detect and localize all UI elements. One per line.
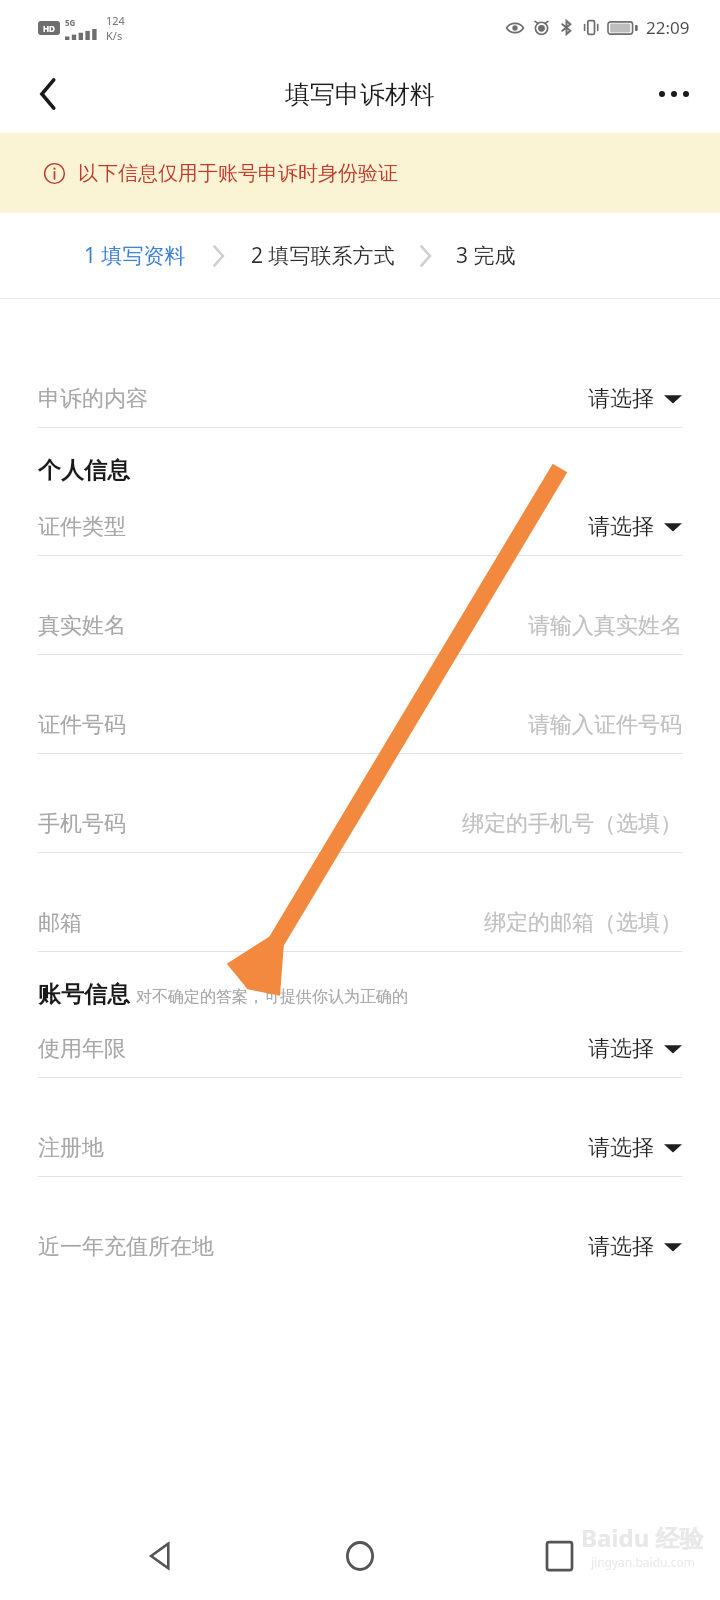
staticText: 账号信息 [38, 980, 130, 1009]
button[interactable]: 注册地 [0, 1120, 720, 1176]
staticText: 手机号码 [38, 810, 126, 838]
staticText: HD [43, 23, 55, 34]
staticText: 近一年充值所在地 [38, 1233, 214, 1261]
staticText: 5G [65, 17, 76, 28]
staticText: 请选择 [588, 1035, 654, 1063]
button[interactable]: 证件号码 [0, 697, 720, 753]
button[interactable]: 证件类型 [0, 499, 720, 555]
staticText: 证件号码 [38, 711, 126, 739]
staticText: 请选择 [588, 1233, 654, 1261]
staticText: 注册地 [38, 1134, 104, 1162]
button[interactable]: 使用年限 [0, 1021, 720, 1077]
staticText: 绑定的手机号（选填） [462, 810, 682, 838]
staticText: 绑定的邮箱（选填） [484, 909, 682, 937]
staticText: 124 [106, 13, 125, 28]
staticText: K/s [106, 28, 123, 43]
button[interactable]: 手机号码 [0, 796, 720, 852]
staticText: 请输入真实姓名 [528, 612, 682, 640]
staticText: 证件类型 [38, 513, 126, 541]
staticText: 请选择 [588, 1134, 654, 1162]
staticText: 请选择 [588, 385, 654, 413]
button[interactable]: 近一年充值所在地 [0, 1219, 720, 1275]
staticText: 邮箱 [38, 909, 82, 937]
button[interactable]: 真实姓名 [0, 598, 720, 654]
staticText: 请输入证件号码 [528, 711, 682, 739]
staticText: 使用年限 [38, 1035, 126, 1063]
staticText: 填写申诉材料 [285, 79, 435, 110]
button[interactable]: 申诉的内容 [0, 371, 720, 427]
button[interactable]: 1 填写资料 [84, 241, 186, 270]
staticText: 真实姓名 [38, 612, 126, 640]
staticText: 22:09 [646, 16, 690, 39]
staticText: 2 填写联系方式 [251, 241, 395, 270]
button[interactable]: Home [322, 1518, 398, 1594]
button[interactable]: 邮箱 [0, 895, 720, 951]
staticText: Baidu 经验 [581, 1521, 704, 1554]
staticText: 1 填写资料 [84, 241, 186, 270]
button[interactable]: Recent apps [521, 1518, 597, 1594]
button[interactable]: Back [20, 66, 76, 122]
staticText: jingyan.baidu.com [591, 1554, 695, 1570]
staticText: 以下信息仅用于账号申诉时身份验证 [78, 161, 398, 186]
staticText: 对不确定的答案，可提供你认为正确的 [136, 987, 408, 1007]
staticText: 请选择 [588, 513, 654, 541]
staticText: 个人信息 [38, 456, 130, 485]
button[interactable]: Back [123, 1518, 199, 1594]
button[interactable]: More options [646, 66, 702, 122]
staticText: 申诉的内容 [38, 385, 148, 413]
staticText: 3 完成 [456, 241, 516, 270]
button[interactable]: 2 填写联系方式 [251, 241, 395, 270]
button[interactable]: 3 完成 [456, 241, 516, 270]
